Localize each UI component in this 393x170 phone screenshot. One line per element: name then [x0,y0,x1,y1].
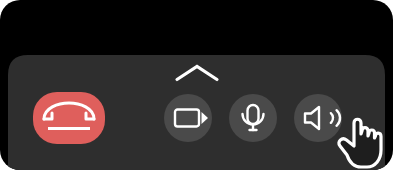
button[interactable]: Expand call options [175,60,219,86]
button[interactable]: Speaker [294,94,342,142]
button[interactable]: Mute microphone [229,94,277,142]
button[interactable]: End call [33,92,105,144]
button[interactable]: Turn on camera [164,94,212,142]
